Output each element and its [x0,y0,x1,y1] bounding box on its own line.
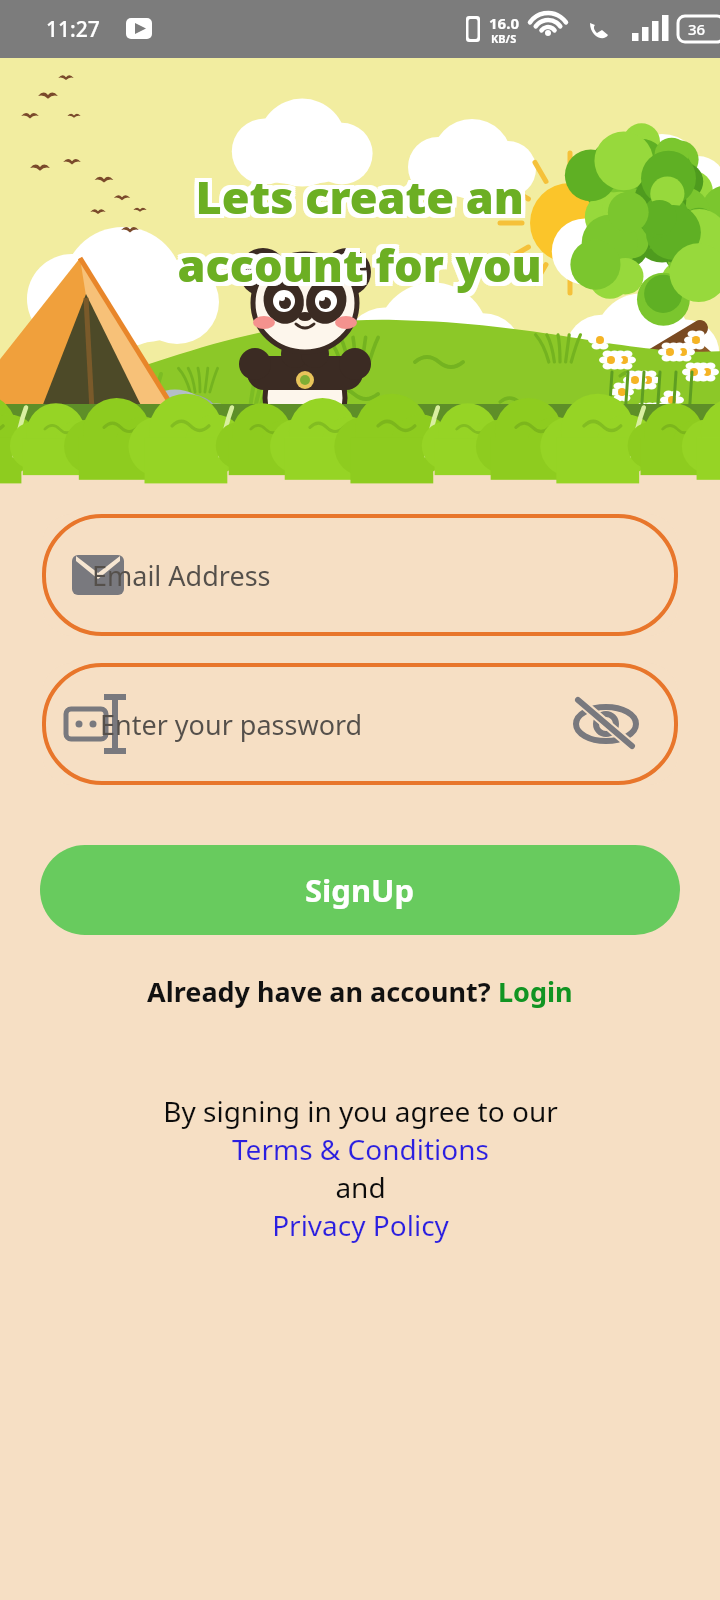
staticText: Enter your password [100,706,363,743]
button[interactable]: SignUp [40,845,680,935]
staticText: 16.0 [489,13,519,33]
button[interactable]: Terms & Conditions [232,1130,489,1168]
staticText: Privacy Policy [272,1206,449,1244]
staticText: SignUp [305,869,415,911]
staticText: KB/S [491,31,517,46]
staticText: By signing in you agree to our [163,1092,558,1130]
staticText: Already have an account? [147,973,498,1010]
staticText: 11:27 [46,15,100,44]
button[interactable]: Enter your password [42,663,678,785]
staticText: Login [498,973,573,1010]
staticText: Terms & Conditions [232,1130,489,1168]
staticText: Email Address [92,557,271,594]
button[interactable]: Login [498,973,573,1010]
button[interactable]: Email Address [42,514,678,636]
staticText: and [335,1168,386,1206]
staticText: 36 [688,19,706,39]
button[interactable]: Privacy Policy [272,1206,449,1244]
